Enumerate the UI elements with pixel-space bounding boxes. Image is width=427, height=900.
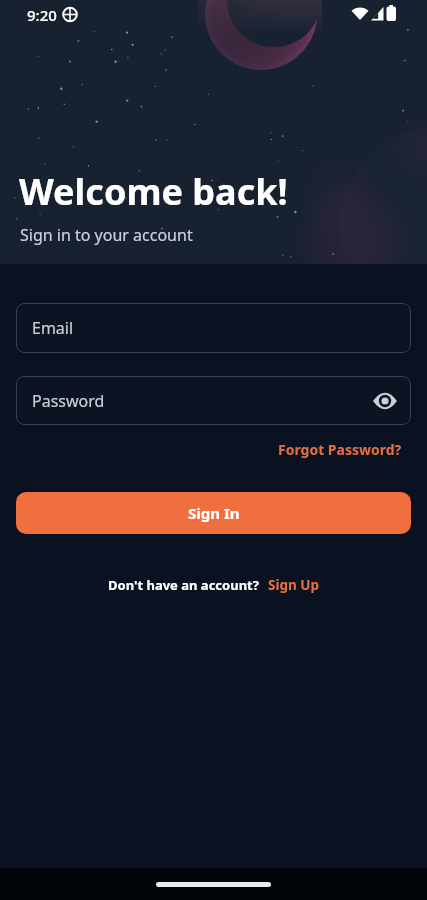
staticText: Welcome back! xyxy=(19,167,288,216)
staticText: Sign In xyxy=(188,503,240,523)
button[interactable]: Password xyxy=(16,376,411,425)
button[interactable]: Email xyxy=(16,303,411,353)
button[interactable]: Sign Up xyxy=(268,576,320,594)
staticText: Sign in to your account xyxy=(20,224,193,246)
staticText: Email xyxy=(32,317,74,339)
button[interactable] xyxy=(373,389,397,413)
button[interactable]: Sign In xyxy=(16,492,411,534)
staticText: Don't have an account? xyxy=(108,576,259,594)
button[interactable]: Forgot Password? xyxy=(278,440,402,459)
staticText: Password xyxy=(32,390,105,412)
staticText: 9:20 xyxy=(27,5,57,25)
